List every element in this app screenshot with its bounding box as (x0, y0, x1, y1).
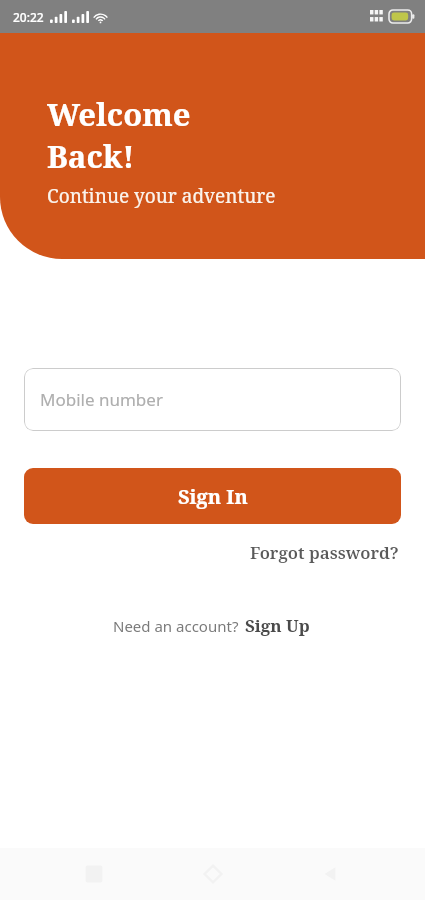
staticText: Back! (47, 135, 135, 177)
button[interactable]: Sign In (24, 468, 401, 524)
button[interactable]: Forgot password? (248, 538, 401, 567)
staticText: Welcome (47, 93, 191, 135)
button[interactable]: Sign Up (243, 611, 312, 640)
staticText: Need an account? (113, 616, 243, 636)
staticText: Sign Up (245, 614, 310, 637)
staticText: 20:22 (13, 9, 44, 25)
staticText: Forgot password? (250, 541, 399, 564)
staticText: Continue your adventure (47, 183, 276, 209)
button[interactable]: Mobile number (24, 368, 401, 431)
staticText: Sign In (178, 483, 248, 510)
staticText: Mobile number (40, 388, 163, 411)
